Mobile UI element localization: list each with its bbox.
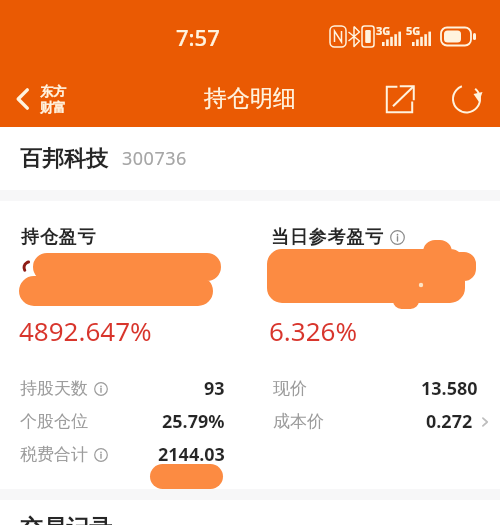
staticText: 百邦科技: [20, 145, 108, 173]
staticText: 4892.647%: [19, 313, 152, 348]
button[interactable]: 税费合计: [20, 438, 225, 471]
button[interactable]: Back: [3, 79, 43, 119]
button[interactable]: Eastmoney home: [40, 83, 66, 115]
button[interactable]: 成本价: [273, 405, 492, 438]
staticText: 持仓明细: [204, 84, 296, 113]
button[interactable]: 百邦科技: [20, 127, 500, 190]
staticText: 5G: [406, 23, 421, 38]
staticText: 持股天数: [20, 378, 88, 399]
staticText: 0.272: [426, 409, 473, 434]
staticText: 13.580: [421, 376, 478, 401]
staticText: 25.79%: [162, 409, 225, 434]
staticText: 个股仓位: [20, 411, 88, 432]
staticText: 持仓盈亏: [21, 226, 97, 249]
staticText: 税费合计: [20, 444, 88, 465]
button[interactable]: 个股仓位: [20, 405, 225, 438]
staticText: 成本价: [273, 411, 324, 432]
staticText: 6.326%: [269, 313, 358, 348]
staticText: 7:57: [176, 22, 220, 52]
button[interactable]: 交易记录: [20, 514, 112, 525]
staticText: 3G: [376, 23, 391, 38]
staticText: 财富: [40, 99, 66, 115]
staticText: 当日参考盈亏: [271, 226, 384, 249]
button[interactable]: 现价: [273, 372, 478, 405]
button[interactable]: Refresh: [445, 76, 491, 122]
staticText: 现价: [273, 378, 307, 399]
staticText: 2144.03: [158, 442, 225, 467]
staticText: 93: [204, 376, 225, 401]
button[interactable]: 持股天数: [20, 372, 225, 405]
staticText: 东方: [40, 83, 66, 99]
staticText: 300736: [122, 146, 187, 171]
button[interactable]: Share: [376, 76, 422, 122]
